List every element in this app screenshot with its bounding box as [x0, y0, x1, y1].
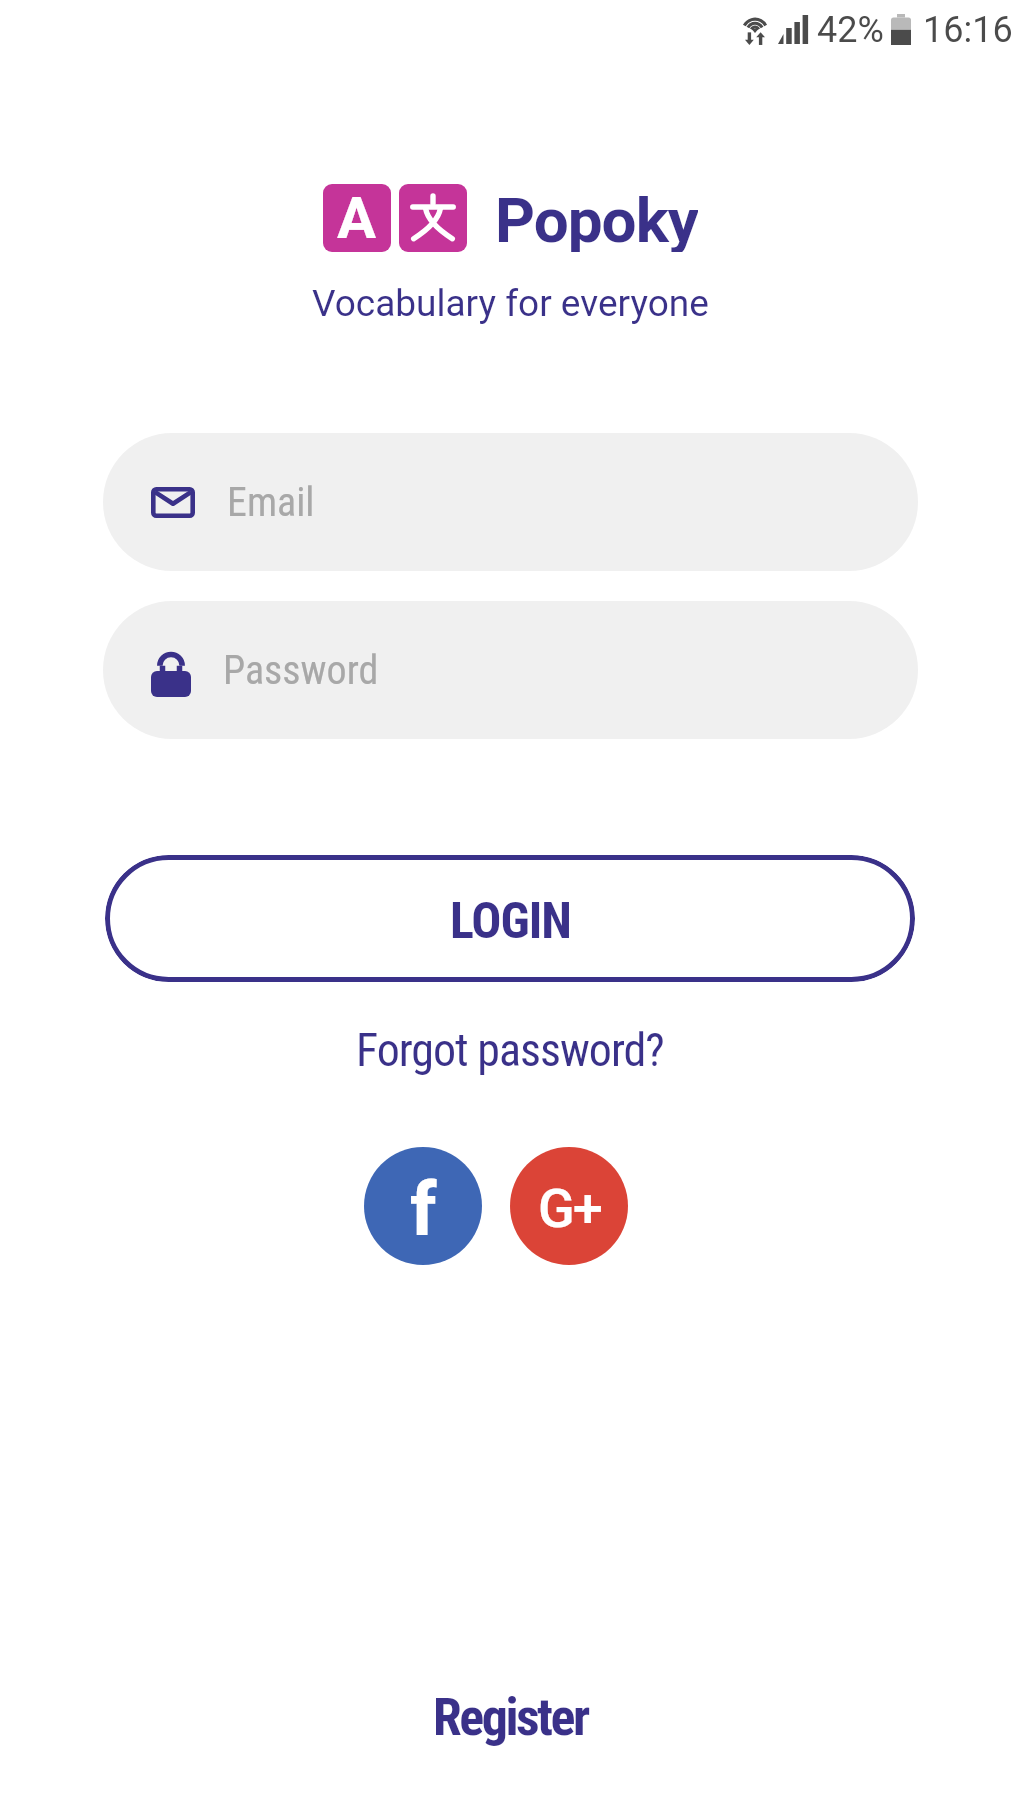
- button[interactable]: Password: [103, 601, 918, 739]
- staticText: Password: [223, 647, 379, 694]
- button[interactable]: Forgot password?: [356, 1023, 664, 1077]
- staticText: 16:16: [923, 9, 1013, 50]
- staticText: Register: [433, 1687, 588, 1748]
- staticText: A: [337, 184, 377, 252]
- staticText: f: [410, 1166, 437, 1253]
- button[interactable]: LOGIN: [105, 855, 915, 982]
- staticText: Popoky: [495, 184, 698, 252]
- staticText: Vocabulary for everyone: [312, 282, 709, 325]
- staticText: Email: [227, 479, 315, 526]
- button[interactable]: Register: [433, 1687, 588, 1748]
- staticText: Forgot password?: [356, 1023, 664, 1077]
- staticText: 42%: [817, 9, 884, 50]
- button[interactable]: Email: [103, 433, 918, 571]
- button[interactable]: f: [364, 1147, 482, 1265]
- staticText: G+: [538, 1177, 601, 1240]
- button[interactable]: G+: [510, 1147, 628, 1265]
- staticText: LOGIN: [450, 892, 571, 951]
